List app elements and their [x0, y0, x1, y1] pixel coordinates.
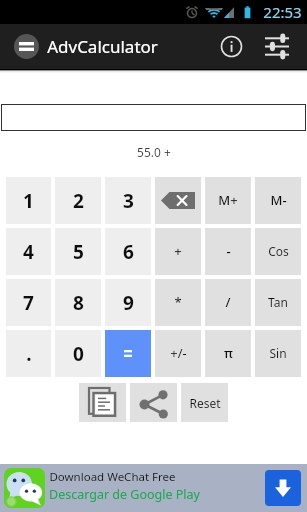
button[interactable]: Settings	[254, 24, 299, 69]
staticText: M-	[270, 191, 287, 209]
staticText: 8	[73, 290, 84, 316]
button[interactable]: App icon	[14, 34, 39, 59]
button[interactable]: 5	[55, 228, 101, 275]
staticText: /	[225, 293, 231, 311]
button[interactable]: -	[205, 228, 251, 275]
staticText: 1	[23, 188, 34, 214]
button[interactable]: Share	[130, 383, 177, 422]
button[interactable]	[1, 104, 306, 131]
staticText: Tan	[268, 294, 288, 310]
staticText: 2	[73, 188, 84, 214]
staticText: AdvCalculator	[47, 35, 158, 58]
button[interactable]: 2	[55, 177, 101, 224]
button[interactable]: M-	[255, 177, 301, 224]
button[interactable]: 9	[105, 279, 151, 326]
staticText: *	[174, 293, 182, 311]
staticText: Cos	[268, 243, 289, 259]
button[interactable]: 8	[55, 279, 101, 326]
button[interactable]	[105, 330, 151, 377]
button[interactable]: Download	[265, 470, 301, 506]
button[interactable]: M+	[205, 177, 251, 224]
button[interactable]: +/-	[155, 330, 201, 377]
button[interactable]: Tan	[255, 279, 301, 326]
staticText: M+	[218, 191, 238, 209]
staticText: π	[224, 344, 233, 362]
button[interactable]: WeChat ad	[4, 468, 45, 508]
button[interactable]: π	[205, 330, 251, 377]
button[interactable]: Sin	[255, 330, 301, 377]
staticText: 7	[23, 290, 34, 316]
staticText: 3	[123, 188, 134, 214]
staticText: 4	[23, 239, 34, 265]
button[interactable]: 3	[105, 177, 151, 224]
staticText: .	[26, 341, 32, 367]
button[interactable]	[155, 177, 201, 224]
staticText: Sin	[269, 345, 287, 361]
button[interactable]: Copy	[79, 383, 126, 422]
staticText: -	[226, 242, 231, 260]
staticText: Reset	[189, 395, 221, 411]
staticText: +/-	[170, 344, 187, 362]
button[interactable]: 1	[6, 177, 51, 224]
button[interactable]: +	[155, 228, 201, 275]
staticText: 9	[123, 290, 134, 316]
button[interactable]: .	[6, 330, 51, 377]
staticText: Download WeChat Free	[49, 469, 176, 485]
button[interactable]: *	[155, 279, 201, 326]
staticText: Descargar de Google Play	[49, 486, 200, 503]
staticText: 22:53	[263, 2, 302, 22]
button[interactable]: Cos	[255, 228, 301, 275]
button[interactable]: 0	[55, 330, 101, 377]
staticText: +	[174, 242, 182, 260]
button[interactable]: Info	[209, 24, 254, 69]
button[interactable]: 7	[6, 279, 51, 326]
staticText: 5	[73, 239, 84, 265]
staticText: 0	[73, 341, 84, 367]
staticText: 6	[123, 239, 134, 265]
button[interactable]: 4	[6, 228, 51, 275]
button[interactable]: Reset	[181, 383, 228, 422]
button[interactable]: 6	[105, 228, 151, 275]
button[interactable]: /	[205, 279, 251, 326]
staticText: 55.0 +	[137, 144, 171, 160]
